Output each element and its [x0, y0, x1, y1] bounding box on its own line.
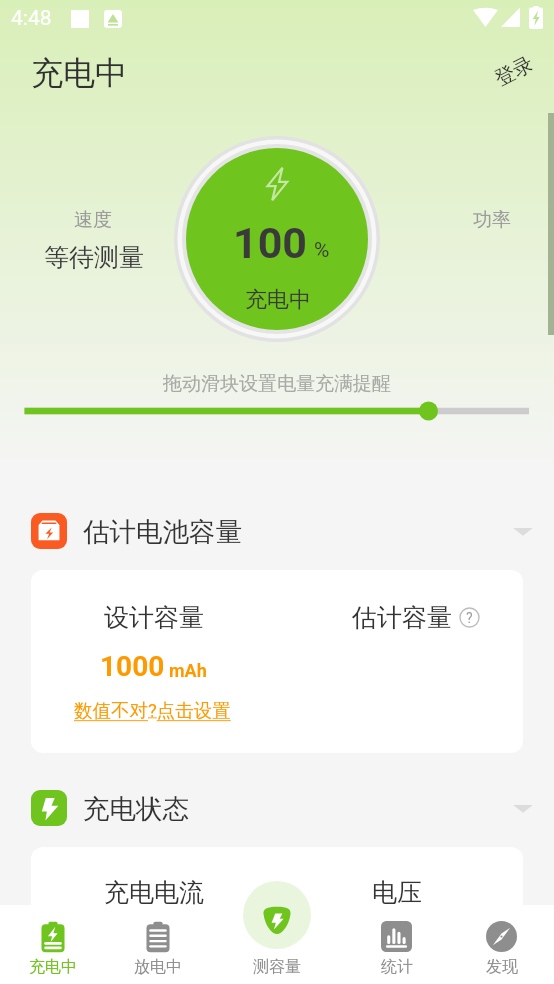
staticText: 数值不对?点击设置: [74, 699, 231, 722]
button[interactable]: 统计: [344, 905, 449, 984]
staticText: 100: [233, 218, 308, 268]
button[interactable]: 充电状态: [31, 790, 534, 826]
button[interactable]: 发现: [449, 905, 554, 984]
staticText: %: [314, 238, 330, 263]
staticText: 估计电池容量: [83, 515, 242, 548]
staticText: 1000: [100, 650, 165, 683]
staticText: mAh: [169, 660, 207, 681]
staticText: 等待测量: [44, 242, 144, 273]
staticText: 估计容量: [352, 602, 452, 633]
staticText: 登录: [490, 51, 537, 92]
staticText: 4:48: [11, 6, 52, 31]
staticText: 设计容量: [104, 602, 204, 633]
button[interactable]: 放电中: [105, 905, 210, 984]
button[interactable]: [0, 400, 554, 422]
staticText: 发现: [486, 957, 518, 977]
staticText: ?: [466, 610, 473, 626]
staticText: 功率: [473, 208, 511, 232]
staticText: 充电电流: [104, 877, 204, 908]
button[interactable]: 充电中: [0, 905, 105, 984]
staticText: 充电中: [31, 53, 127, 93]
button[interactable]: 估计电池容量: [31, 513, 534, 549]
button[interactable]: 数值不对?点击设置: [74, 699, 231, 722]
staticText: 充电中: [245, 286, 311, 314]
staticText: 统计: [381, 957, 413, 977]
staticText: 测容量: [253, 957, 301, 977]
button[interactable]: 登录: [488, 53, 540, 90]
staticText: 电压: [372, 877, 422, 908]
staticText: 速度: [74, 208, 112, 232]
staticText: 充电中: [29, 957, 77, 977]
staticText: 放电中: [134, 957, 182, 977]
button[interactable]: 测容量: [227, 881, 327, 984]
staticText: 拖动滑块设置电量充满提醒: [163, 372, 391, 396]
staticText: 充电状态: [83, 792, 189, 825]
